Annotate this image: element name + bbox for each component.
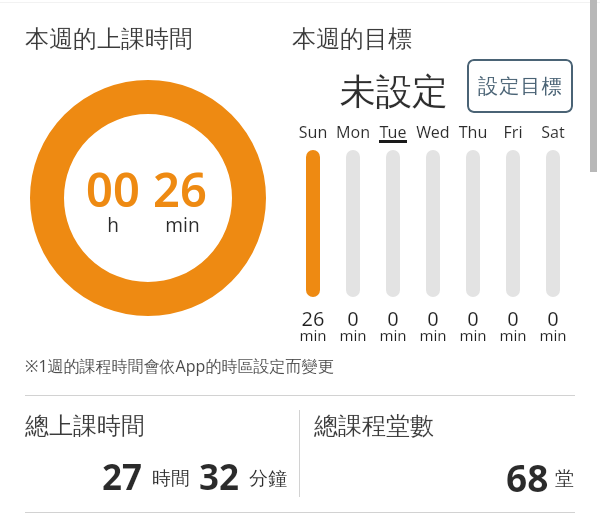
staticText: 26 <box>153 157 207 221</box>
staticText: 68 <box>506 452 549 502</box>
button[interactable] <box>333 118 373 343</box>
staticText: 0 <box>449 305 497 332</box>
staticText: 分鐘 <box>249 467 287 491</box>
button[interactable] <box>14 400 294 505</box>
staticText: min <box>529 325 577 345</box>
staticText: Tue <box>369 121 417 143</box>
staticText: 0 <box>409 305 457 332</box>
staticText: ※1週的課程時間會依App的時區設定而變更 <box>25 355 334 377</box>
button[interactable] <box>373 118 413 343</box>
staticText: Wed <box>409 121 457 143</box>
staticText: 設定目標 <box>478 74 563 99</box>
staticText: 本週的目標 <box>292 24 412 54</box>
button[interactable] <box>305 400 585 505</box>
button[interactable]: 本週的上課時間 0 小時 26 分 <box>30 80 266 316</box>
staticText: min <box>409 325 457 345</box>
staticText: min <box>449 325 497 345</box>
staticText: 未設定 <box>340 69 448 114</box>
staticText: 00 <box>86 157 140 221</box>
staticText: h <box>107 212 119 238</box>
staticText: 0 <box>489 305 537 332</box>
staticText: 本週的上課時間 <box>25 24 193 54</box>
staticText: 時間 <box>152 467 190 491</box>
button[interactable] <box>293 118 333 343</box>
staticText: min <box>165 212 200 238</box>
staticText: Thu <box>449 121 497 143</box>
button[interactable] <box>533 118 573 343</box>
staticText: Sat <box>529 121 577 143</box>
staticText: Mon <box>329 121 377 143</box>
staticText: 26 <box>289 305 337 332</box>
button[interactable]: 設定目標 <box>467 59 573 113</box>
staticText: 32 <box>199 453 240 501</box>
staticText: 總上課時間 <box>25 411 145 441</box>
button[interactable] <box>493 118 533 343</box>
staticText: min <box>489 325 537 345</box>
staticText: 0 <box>529 305 577 332</box>
staticText: 總課程堂數 <box>314 411 434 441</box>
staticText: 0 <box>329 305 377 332</box>
staticText: Fri <box>489 121 537 143</box>
button[interactable] <box>413 118 453 343</box>
staticText: 堂 <box>555 467 574 491</box>
staticText: min <box>289 325 337 345</box>
staticText: min <box>369 325 417 345</box>
staticText: min <box>329 325 377 345</box>
staticText: Sun <box>289 121 337 143</box>
staticText: 0 <box>369 305 417 332</box>
button[interactable] <box>453 118 493 343</box>
staticText: 27 <box>102 453 143 501</box>
